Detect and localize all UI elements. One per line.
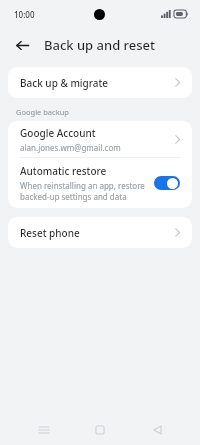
button[interactable]: Recent apps <box>31 417 57 443</box>
staticText: 10:00 <box>14 9 35 20</box>
staticText: Automatic restore <box>20 164 107 178</box>
staticText: Reset phone <box>20 226 175 240</box>
staticText: Back up and reset <box>44 36 156 54</box>
button[interactable]: Reset phone <box>8 217 192 248</box>
button[interactable]: Automatic restore toggle <box>154 176 180 190</box>
staticText: alan.jones.wm@gmail.com <box>20 142 121 153</box>
staticText: When reinstalling an app, restore <box>20 180 145 191</box>
staticText: Back up & migrate <box>20 76 175 90</box>
button[interactable]: Back <box>11 34 33 56</box>
button[interactable]: Google Account <box>8 121 192 157</box>
button[interactable]: Back up & migrate <box>8 67 192 98</box>
button[interactable]: Automatic restore <box>8 158 192 208</box>
button[interactable]: Home <box>87 417 113 443</box>
button[interactable]: Back <box>144 417 170 443</box>
staticText: Google Account <box>20 126 96 140</box>
staticText: Google backup <box>16 107 69 117</box>
staticText: backed-up settings and data <box>20 191 127 202</box>
